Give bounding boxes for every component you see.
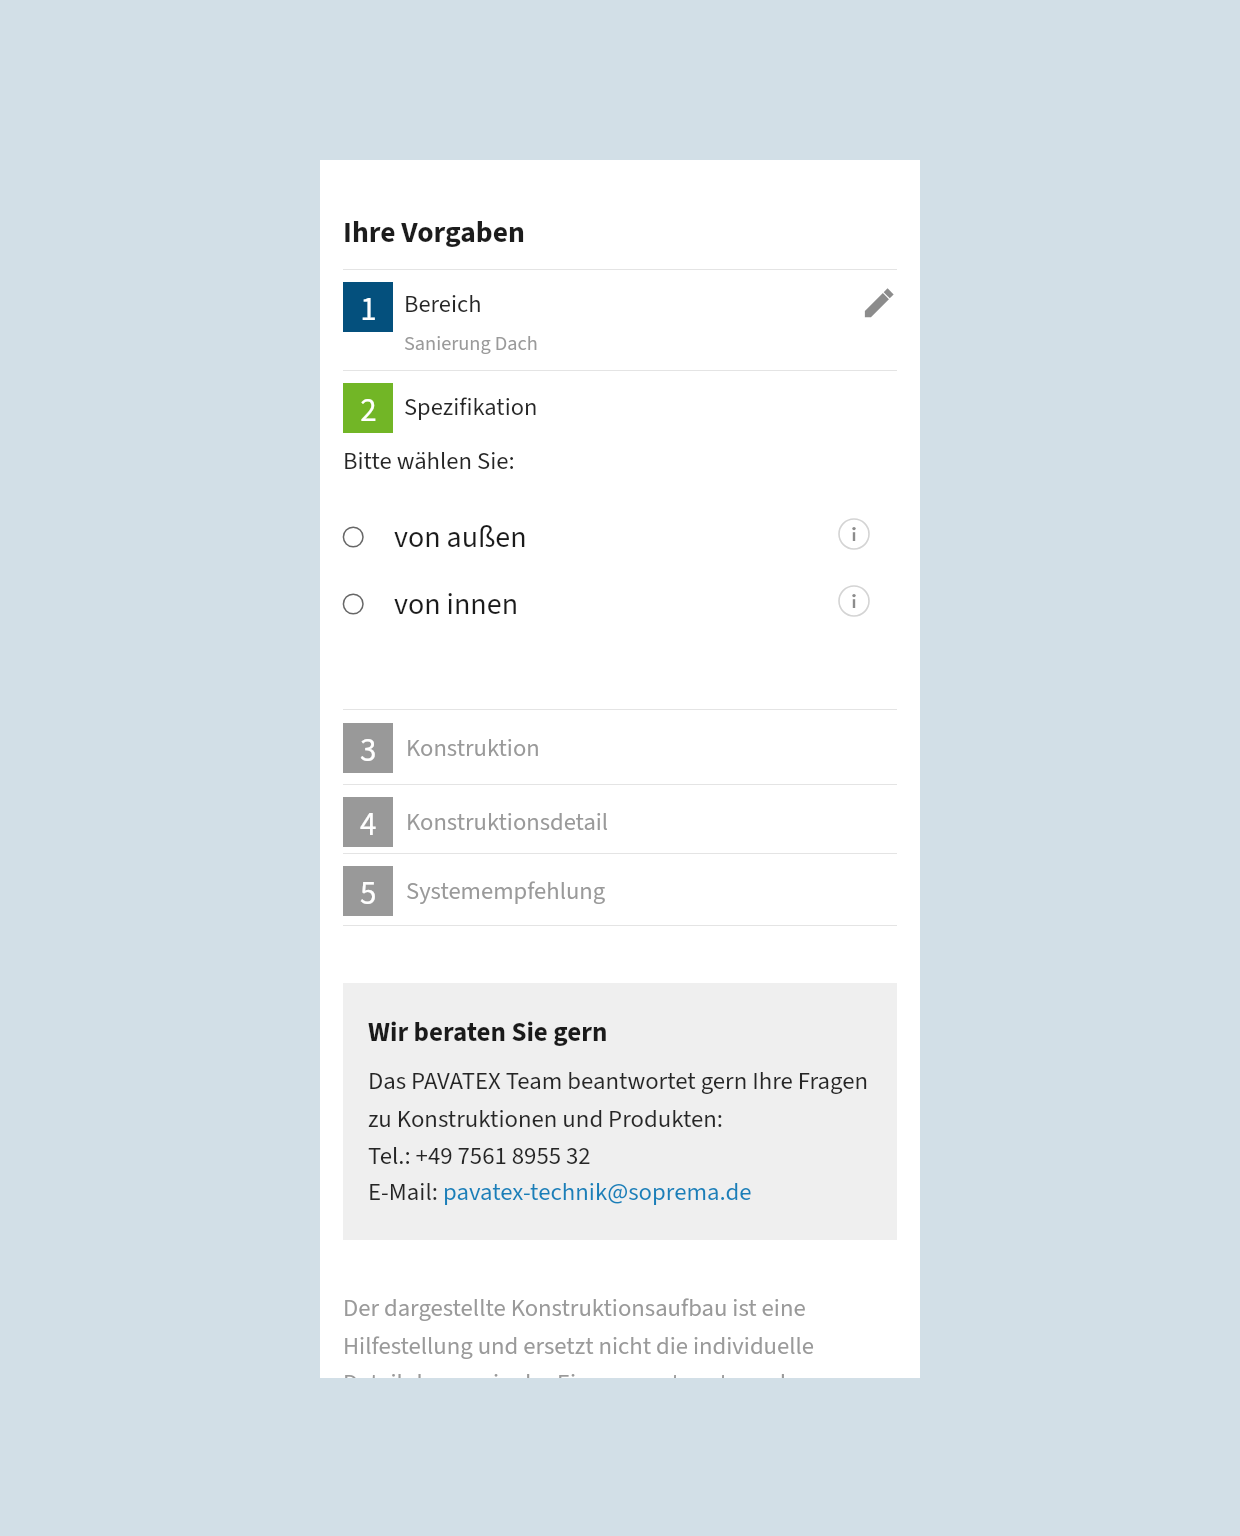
button[interactable]: 3 bbox=[343, 723, 897, 773]
staticText: Sanierung Dach bbox=[404, 329, 538, 358]
button[interactable]: pavatex-technik@soprema.de bbox=[443, 1175, 752, 1210]
staticText: Konstruktion bbox=[406, 731, 540, 766]
staticText: Das PAVATEX Team beantwortet gern Ihre F… bbox=[368, 1064, 869, 1174]
button[interactable]: 5 bbox=[343, 866, 897, 916]
staticText: von außen bbox=[394, 516, 857, 559]
staticText: Ihre Vorgaben bbox=[343, 212, 525, 254]
button[interactable]: 4 bbox=[343, 797, 897, 847]
staticText: 4 bbox=[360, 801, 377, 848]
staticText: E-Mail: bbox=[368, 1175, 443, 1210]
button[interactable]: Bearbeiten bbox=[856, 279, 902, 325]
button[interactable]: von außen bbox=[343, 512, 897, 562]
staticText: 5 bbox=[360, 870, 377, 917]
staticText: von innen bbox=[394, 583, 857, 626]
staticText: Konstruktionsdetail bbox=[406, 805, 609, 840]
staticText: Spezifikation bbox=[404, 390, 538, 425]
staticText: 2 bbox=[360, 387, 377, 434]
staticText: Der dargestellte Konstruktionsaufbau ist… bbox=[343, 1291, 897, 1378]
staticText: Bereich bbox=[404, 287, 482, 322]
staticText: 3 bbox=[360, 727, 377, 774]
staticText: Bitte wählen Sie: bbox=[343, 444, 515, 479]
staticText: 1 bbox=[360, 286, 377, 333]
staticText: Wir beraten Sie gern bbox=[368, 1013, 608, 1051]
button[interactable]: von innen bbox=[343, 579, 897, 629]
button[interactable]: Info bbox=[834, 581, 874, 621]
button[interactable]: Info bbox=[834, 514, 874, 554]
staticText: Systemempfehlung bbox=[406, 874, 606, 909]
